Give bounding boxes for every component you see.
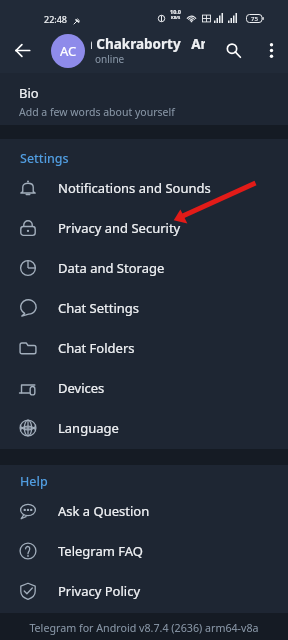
staticText: Privacy Policy <box>58 582 141 600</box>
staticText: Chat Folders <box>58 339 135 357</box>
staticText: Add a few words about yourself <box>19 105 175 119</box>
button[interactable]: Telegram FAQ <box>0 531 288 571</box>
staticText: 22:48 <box>44 13 68 25</box>
staticText: n Chakraborty An Ani <box>91 35 205 53</box>
staticText: Help <box>20 473 48 490</box>
button[interactable]: Profile photo <box>51 34 85 68</box>
button[interactable]: Chat Settings <box>0 288 288 328</box>
staticText: Settings <box>20 150 69 167</box>
button[interactable]: Back <box>0 28 45 73</box>
staticText: online <box>95 52 125 66</box>
staticText: KB/S <box>171 15 181 20</box>
button[interactable]: Devices <box>0 368 288 408</box>
button[interactable]: Notifications and Sounds <box>0 168 288 208</box>
button[interactable]: Data and Storage <box>0 248 288 288</box>
staticText: Notifications and Sounds <box>58 179 211 197</box>
staticText: Chat Settings <box>58 299 140 317</box>
button[interactable]: Privacy and Security <box>0 208 288 248</box>
staticText: Bio <box>19 84 39 102</box>
button[interactable]: Language <box>0 408 288 448</box>
button[interactable]: Ask a Question <box>0 491 288 531</box>
button[interactable]: Search <box>212 28 252 73</box>
staticText: Devices <box>58 379 105 397</box>
button[interactable]: More options <box>252 28 288 73</box>
staticText: Language <box>58 419 119 437</box>
staticText: 10.0 <box>170 8 181 15</box>
staticText: AC <box>60 42 77 60</box>
button[interactable]: Chat Folders <box>0 328 288 368</box>
staticText: Data and Storage <box>58 259 165 277</box>
staticText: 75 <box>251 15 258 23</box>
staticText: Telegram for Android v8.7.4 (2636) arm64… <box>29 621 259 636</box>
staticText: Ask a Question <box>58 502 150 520</box>
staticText: Privacy and Security <box>58 219 181 237</box>
button[interactable]: Privacy Policy <box>0 571 288 611</box>
staticText: Telegram FAQ <box>58 542 143 560</box>
button[interactable]: Bio <box>0 73 288 125</box>
